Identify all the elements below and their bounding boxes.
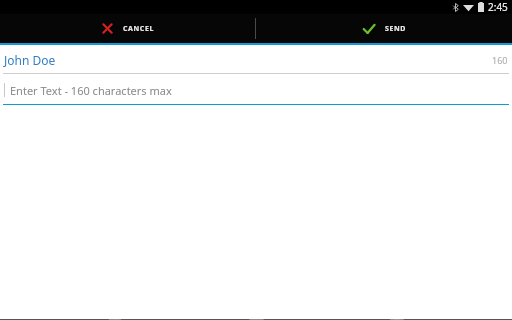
button[interactable]: John Doe xyxy=(4,52,508,68)
staticText: John Doe xyxy=(4,52,492,68)
button[interactable]: SEND xyxy=(256,14,512,43)
staticText: CANCEL xyxy=(123,24,154,34)
staticText: 2:45 xyxy=(488,0,508,14)
button[interactable]: Enter Text - 160 characters max xyxy=(4,82,508,98)
staticText: SEND xyxy=(385,24,406,34)
button[interactable]: CANCEL xyxy=(0,14,255,43)
staticText: Enter Text - 160 characters max xyxy=(10,83,172,98)
staticText: 160 xyxy=(492,54,508,66)
